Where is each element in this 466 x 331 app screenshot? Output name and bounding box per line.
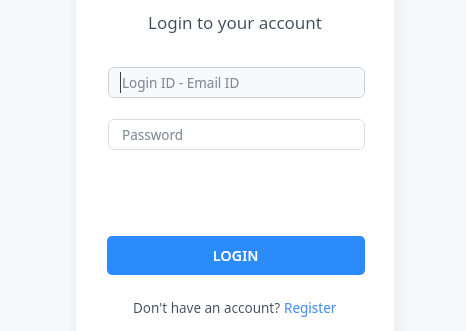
button[interactable]: Password: [108, 119, 365, 150]
staticText: Login ID - Email ID: [122, 74, 240, 92]
button[interactable]: Register: [284, 299, 337, 317]
button[interactable]: LOGIN: [107, 236, 365, 275]
staticText: Login to your account: [148, 11, 322, 34]
button[interactable]: Login ID - Email ID: [108, 67, 365, 98]
staticText: Don't have an account?: [133, 299, 284, 317]
staticText: LOGIN: [213, 246, 259, 265]
staticText: Password: [122, 126, 184, 144]
